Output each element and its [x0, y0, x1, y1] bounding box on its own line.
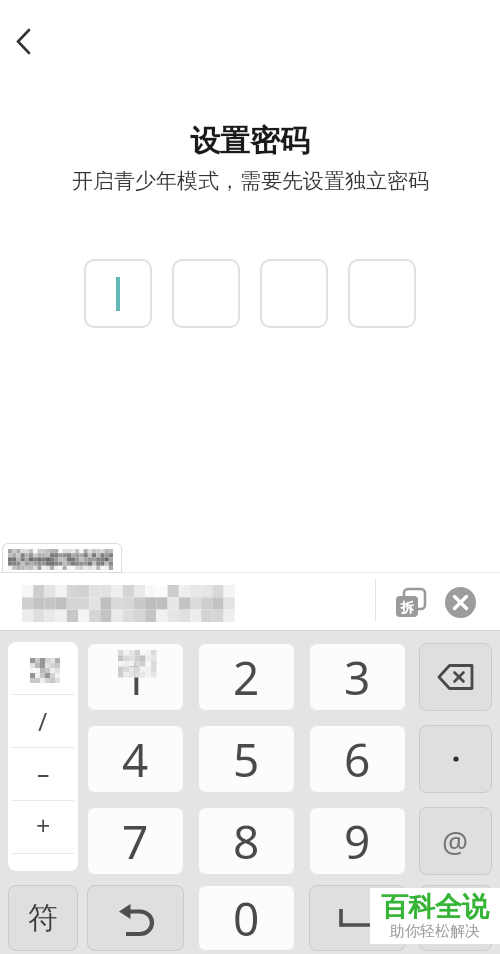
- button[interactable]: [172, 259, 240, 328]
- button[interactable]: 9: [309, 807, 406, 875]
- staticText: –: [37, 756, 50, 790]
- button[interactable]: 7: [87, 807, 184, 875]
- staticText: 0: [233, 887, 260, 950]
- button[interactable]: [419, 725, 492, 793]
- button[interactable]: 符: [8, 885, 78, 951]
- button[interactable]: 3: [309, 643, 406, 711]
- button[interactable]: 5: [198, 725, 295, 793]
- button[interactable]: /: [8, 695, 78, 747]
- staticText: /: [38, 704, 48, 738]
- button[interactable]: [87, 885, 184, 951]
- button[interactable]: 6: [309, 725, 406, 793]
- button[interactable]: [8, 642, 78, 871]
- button[interactable]: 8: [198, 807, 295, 875]
- button[interactable]: 4: [87, 725, 184, 793]
- staticText: 开启青少年模式，需要先设置独立密码: [72, 168, 429, 194]
- staticText: 拆: [401, 599, 414, 615]
- button[interactable]: [309, 885, 406, 951]
- button[interactable]: 0: [198, 885, 295, 951]
- button[interactable]: [8, 26, 42, 60]
- staticText: 助你轻松解决: [390, 922, 480, 941]
- button[interactable]: [445, 587, 476, 618]
- button[interactable]: [419, 643, 492, 711]
- button[interactable]: [84, 259, 152, 328]
- button[interactable]: [348, 259, 416, 328]
- staticText: 百科全说: [381, 890, 489, 924]
- staticText: 设置密码: [190, 122, 310, 160]
- staticText: 6: [344, 728, 371, 791]
- staticText: 2: [233, 646, 260, 709]
- staticText: 9: [344, 810, 371, 873]
- staticText: 3: [344, 646, 371, 709]
- button[interactable]: [2, 543, 122, 573]
- staticText: 4: [122, 728, 149, 791]
- button[interactable]: @: [419, 807, 492, 875]
- button[interactable]: [260, 259, 328, 328]
- staticText: +: [36, 808, 51, 842]
- staticText: 7: [122, 810, 149, 873]
- staticText: 8: [233, 810, 260, 873]
- staticText: @: [442, 822, 469, 861]
- button[interactable]: +: [8, 799, 78, 851]
- button[interactable]: 拆: [392, 586, 428, 620]
- staticText: 符: [28, 899, 58, 937]
- button[interactable]: 1: [87, 643, 184, 711]
- staticText: 1: [122, 646, 149, 709]
- button[interactable]: –: [8, 747, 78, 799]
- button[interactable]: 2: [198, 643, 295, 711]
- staticText: 5: [233, 728, 260, 791]
- button[interactable]: [419, 885, 492, 951]
